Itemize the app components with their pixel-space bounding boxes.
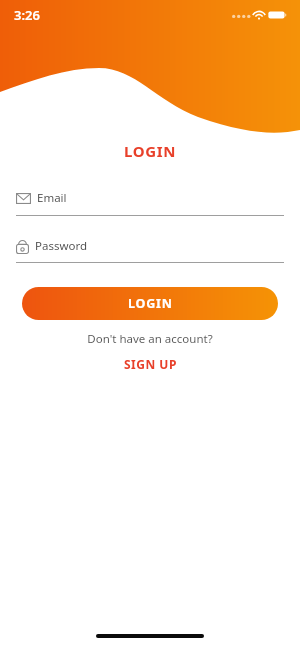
button[interactable]: SIGN UP xyxy=(116,354,185,374)
staticText: 3:26 xyxy=(14,6,40,24)
other: Home indicator xyxy=(96,634,204,638)
button[interactable]: Password xyxy=(16,238,284,263)
staticText: LOGIN xyxy=(0,141,300,161)
button[interactable]: LOGIN xyxy=(22,287,278,320)
staticText: Password xyxy=(35,238,88,254)
button[interactable]: Email xyxy=(16,190,284,216)
staticText: Email xyxy=(37,190,67,206)
staticText: SIGN UP xyxy=(124,356,177,372)
staticText: LOGIN xyxy=(128,295,173,312)
staticText: Don't have an account? xyxy=(0,331,300,347)
